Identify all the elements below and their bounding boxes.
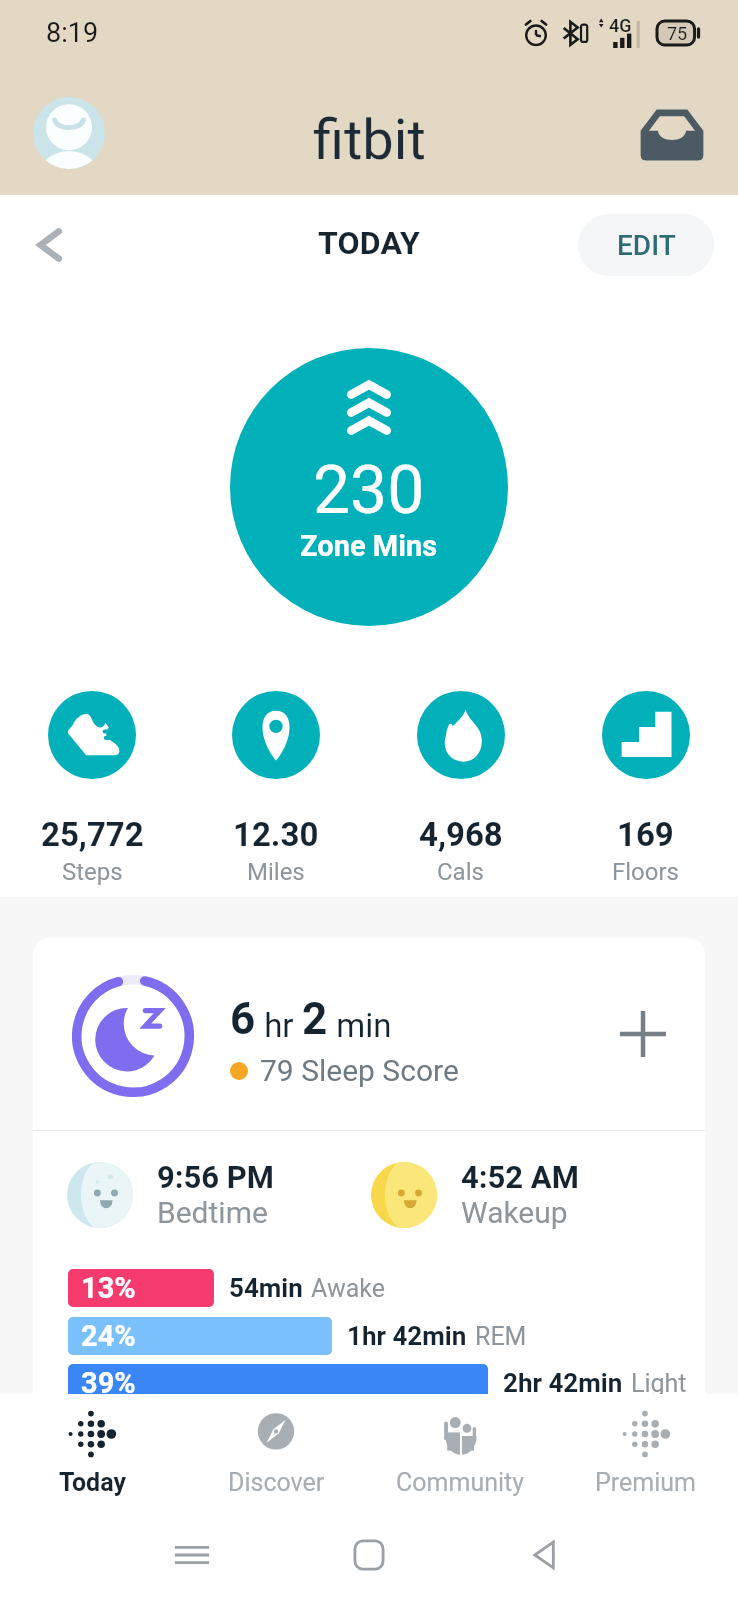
staticText: EDIT [617,229,676,262]
staticText: 24% [81,1319,136,1353]
staticText: Cals [437,858,484,886]
staticText: min [328,1006,392,1045]
staticText: Premium [595,1468,696,1497]
staticText: 12.30 [233,815,319,854]
button[interactable]: Back [20,215,80,275]
staticText: Awake [311,1274,385,1303]
staticText: Light [631,1369,687,1398]
staticText: Discover [228,1468,325,1497]
staticText: 9:56 PM [157,1159,274,1195]
staticText: TODAY [318,224,420,262]
staticText: 4G [609,15,632,36]
button[interactable]: 4,968 [368,691,553,886]
staticText: 79 Sleep Score [260,1053,459,1088]
staticText: 230 [313,452,425,529]
staticText: Miles [247,858,305,886]
staticText: 54min [229,1273,303,1303]
staticText: 6 [230,993,256,1045]
staticText: REM [475,1322,527,1351]
staticText: Floors [612,858,679,886]
button[interactable]: Today [0,1394,184,1510]
button[interactable]: Premium [553,1394,738,1510]
button[interactable]: Inbox [634,95,710,171]
staticText: Wakeup [461,1195,568,1230]
staticText: 4,968 [419,815,503,854]
staticText: 39% [81,1366,136,1400]
staticText: Today [59,1468,126,1497]
button[interactable]: Back [519,1529,571,1581]
button[interactable]: Discover [184,1394,368,1510]
staticText: 13% [81,1271,136,1305]
staticText: Zone Mins [300,529,438,563]
staticText: 2hr 42min [503,1368,623,1398]
staticText: Steps [62,858,123,886]
staticText: 25,772 [41,815,144,854]
button[interactable]: 25,772 [0,691,184,886]
button[interactable]: 169 [553,691,738,886]
staticText: Community [396,1468,525,1497]
staticText: 4:52 AM [461,1159,579,1195]
staticText: 2 [302,993,328,1045]
staticText: hr [256,1006,302,1045]
staticText: Bedtime [157,1195,268,1230]
button[interactable]: Profile [33,97,105,169]
button[interactable]: Community [368,1394,553,1510]
button[interactable]: 6 [33,938,705,1442]
button[interactable]: Add sleep log [611,1002,675,1066]
staticText: 169 [617,815,674,854]
button[interactable]: 230 [230,348,508,626]
staticText: 1hr 42min [347,1321,467,1351]
staticText: fitbit [313,107,426,173]
button[interactable]: Recent apps [166,1529,218,1581]
button[interactable]: Home [343,1529,395,1581]
button[interactable]: EDIT [578,214,714,276]
staticText: 8:19 [46,17,99,49]
button[interactable]: 12.30 [184,691,368,886]
staticText: 75 [667,23,688,44]
